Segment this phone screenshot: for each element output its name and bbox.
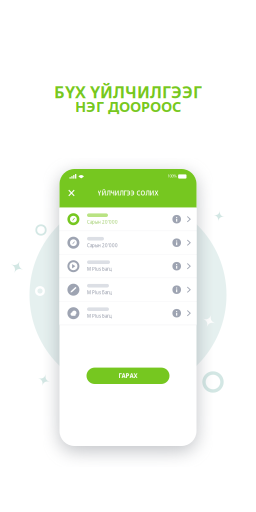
staticText: ГАРАХ	[118, 372, 137, 380]
staticText: M Plus Багц	[87, 289, 112, 295]
button[interactable]: Сарын 20'000	[59, 231, 196, 254]
staticText: 100%	[167, 173, 176, 178]
button[interactable]: M Plus Багц	[59, 302, 196, 325]
button[interactable]: M Plus Багц	[59, 255, 196, 278]
staticText: Сарын 20'000	[87, 219, 118, 225]
staticText: Сарын 20'000	[87, 242, 118, 248]
staticText: M Plus Багц	[87, 313, 112, 319]
staticText: НЭГ ДООРООС	[75, 97, 181, 116]
button[interactable]: M Plus Багц	[59, 278, 196, 301]
staticText: БҮХ ҮЙЛЧИЛГЭЭГ	[54, 81, 202, 103]
staticText: ҮЙЛЧИЛГЭЭ СОЛИХ	[97, 189, 158, 197]
button[interactable]: Сарын 20'000	[59, 208, 196, 231]
button[interactable]: ГАРАХ	[86, 368, 169, 384]
button[interactable]: Close	[63, 185, 80, 201]
staticText: M Plus Багц	[87, 266, 112, 272]
